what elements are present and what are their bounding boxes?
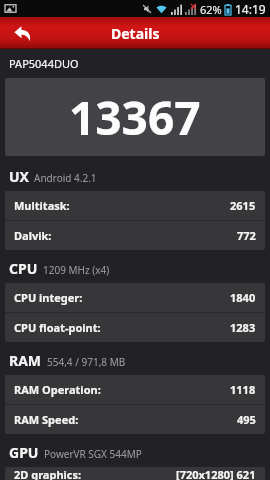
staticText: 2615	[230, 198, 256, 213]
staticText: 13367	[69, 86, 201, 149]
staticText: PowerVR SGX 544MP	[44, 447, 142, 461]
button[interactable]: Multitask:	[5, 191, 265, 220]
staticText: Dalvik:	[14, 228, 52, 243]
staticText: 14:19	[235, 1, 266, 17]
button[interactable]: RAM Speed:	[5, 405, 265, 434]
staticText: CPU	[9, 259, 38, 278]
staticText: 1840	[230, 290, 256, 305]
staticText: CPU float-point:	[14, 320, 101, 335]
button[interactable]: Dalvik:	[5, 221, 265, 250]
button[interactable]: Back	[0, 17, 44, 49]
staticText: Android 4.2.1	[34, 171, 97, 185]
button[interactable]: CPU float-point:	[5, 313, 265, 342]
button[interactable]: RAM Operation:	[5, 375, 265, 404]
staticText: 554,4 / 971,8 MB	[47, 355, 126, 369]
staticText: 2D graphics:	[14, 467, 82, 480]
button[interactable]: 2D graphics:	[5, 467, 265, 480]
staticText: [720x1280] 621	[176, 467, 256, 480]
staticText: RAM	[9, 351, 42, 370]
staticText: 1283	[230, 320, 256, 335]
staticText: 62%	[200, 2, 222, 17]
staticText: 495	[237, 412, 256, 427]
staticText: UX	[9, 167, 29, 186]
staticText: Details	[111, 24, 160, 43]
staticText: 772	[237, 228, 256, 243]
staticText: GPU	[9, 443, 39, 462]
staticText: 1209 MHz (x4)	[43, 263, 110, 277]
staticText: Multitask:	[14, 198, 70, 213]
staticText: 1118	[230, 382, 256, 397]
staticText: RAM Operation:	[14, 382, 101, 397]
staticText: CPU integer:	[14, 290, 83, 305]
staticText: PAP5044DUO	[9, 56, 79, 71]
staticText: RAM Speed:	[14, 412, 79, 427]
button[interactable]: CPU integer:	[5, 283, 265, 312]
